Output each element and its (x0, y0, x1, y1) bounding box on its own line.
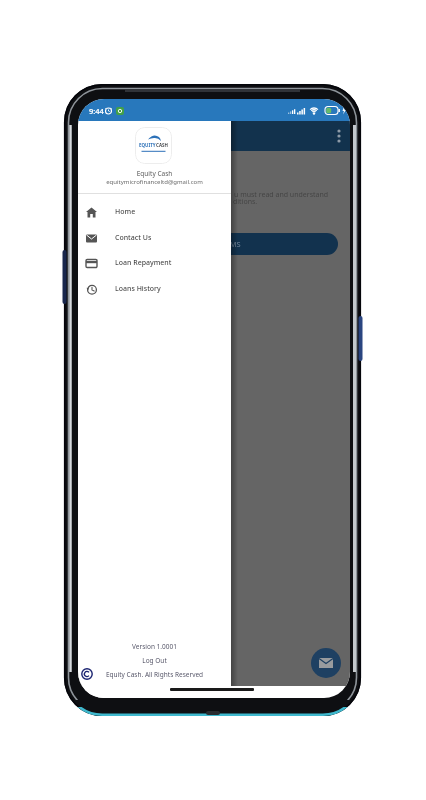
button[interactable]: Loan Repayment (78, 250, 231, 276)
staticText: 9:44 (89, 106, 104, 116)
staticText: u must read and understand (234, 190, 329, 200)
button[interactable] (329, 121, 350, 151)
button[interactable]: Log Out (78, 656, 231, 665)
staticText: Equity Cash. All Rights Reserved (78, 670, 231, 679)
staticText: Home (115, 207, 136, 217)
button[interactable]: ACCEPT TERMS (90, 233, 338, 255)
button[interactable]: Contact Us (78, 225, 231, 251)
staticText: Equity Cash (78, 169, 231, 178)
staticText: Contact Us (115, 233, 152, 243)
button[interactable] (311, 648, 341, 678)
staticText: ditions. (233, 197, 258, 207)
staticText: equitymicrofinanceltd@gmail.com (78, 178, 231, 186)
staticText: Loans History (115, 284, 161, 294)
staticText: ACCEPT TERMS (188, 239, 241, 249)
staticText: Version 1.0001 (78, 642, 231, 651)
button[interactable]: Loans History (78, 276, 231, 302)
staticText: Loan Repayment (115, 258, 172, 268)
staticText: EQUITY (139, 142, 156, 148)
button[interactable]: Home (78, 199, 231, 225)
staticText: CASH (156, 142, 168, 148)
